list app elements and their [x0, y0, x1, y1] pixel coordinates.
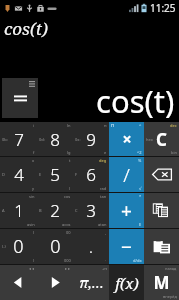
staticText: E [139, 222, 142, 227]
staticText: 0 [13, 234, 24, 259]
staticText: asin [27, 222, 35, 227]
staticText: √ [139, 186, 142, 191]
button[interactable]: Move right [37, 265, 73, 300]
button[interactable]: Move left [0, 265, 37, 300]
button[interactable]: t [37, 157, 73, 192]
staticText: d/dx [133, 258, 142, 263]
button[interactable]: ( [0, 229, 37, 264]
staticText: bin [171, 150, 177, 155]
staticText: tan [100, 194, 107, 199]
staticText: 1 [14, 199, 24, 222]
button[interactable]: Copy [144, 193, 179, 228]
button[interactable]: sin [0, 193, 37, 228]
staticText: M [153, 271, 170, 294]
staticText: · [105, 258, 107, 263]
button[interactable]: tan [73, 193, 109, 228]
staticText: sin [29, 194, 35, 199]
staticText: cos [64, 194, 71, 199]
staticText: f(x) [115, 273, 139, 293]
staticText: π [104, 123, 107, 128]
staticText: * [139, 194, 142, 199]
staticText: , [105, 230, 107, 235]
staticText: 9 [86, 128, 96, 151]
staticText: Π [111, 123, 114, 128]
staticText: atan [98, 222, 107, 227]
staticText: − [121, 234, 132, 260]
staticText: +π [102, 266, 107, 271]
staticText: ^ [139, 123, 142, 128]
staticText: i [33, 123, 35, 128]
staticText: π,… [79, 273, 104, 292]
staticText: f [33, 150, 35, 155]
staticText: D [2, 172, 5, 177]
staticText: % [138, 158, 142, 163]
button[interactable]: π [73, 122, 109, 156]
staticText: 000 [64, 258, 71, 263]
staticText: cos(t) [4, 17, 48, 40]
staticText: 3 [86, 199, 96, 222]
staticText: 11:25 [150, 1, 176, 15]
button[interactable]: Equals [2, 78, 38, 118]
button[interactable]: Backspace [144, 157, 179, 192]
staticText: 2 [50, 199, 60, 222]
staticText: acos [62, 222, 71, 227]
button[interactable]: % [109, 157, 144, 192]
staticText: 8 [50, 128, 60, 151]
button[interactable]: cos [37, 193, 73, 228]
button[interactable]: +π [73, 265, 109, 300]
button[interactable]: 00 [37, 229, 73, 264]
staticText: dec [170, 123, 177, 128]
button[interactable]: deg [73, 157, 109, 192]
staticText: cos(t) [96, 80, 175, 122]
staticText: 4 [14, 163, 24, 186]
staticText: ln [67, 123, 71, 128]
button[interactable]: x [0, 157, 37, 192]
staticText: 0b: [2, 137, 8, 142]
staticText: ▸ ▸ [65, 266, 71, 271]
button[interactable]: ln [37, 122, 73, 156]
staticText: ^2 [137, 150, 142, 155]
staticText: lg [67, 150, 71, 155]
staticText: ( [33, 230, 35, 235]
staticText: e [104, 150, 107, 155]
button[interactable]: i [0, 122, 37, 156]
staticText: C [75, 208, 78, 213]
staticText: A [2, 208, 5, 213]
staticText: deg [99, 158, 107, 163]
staticText: ◂ ◂ [29, 266, 35, 271]
button[interactable]: назад [144, 265, 179, 300]
button[interactable]: dec [144, 122, 179, 156]
staticText: C [156, 128, 167, 151]
button[interactable]: Π [109, 122, 144, 156]
staticText: 00 [66, 230, 71, 235]
staticText: 6 [86, 163, 96, 186]
staticText: x [32, 158, 35, 163]
staticText: rad [100, 186, 107, 191]
staticText: назад [165, 266, 177, 271]
staticText: 0 [50, 234, 61, 259]
staticText: B [39, 208, 42, 213]
staticText: 0x: [75, 137, 81, 142]
staticText: 7 [14, 128, 24, 151]
button[interactable]: , [73, 229, 109, 264]
staticText: (-) [2, 244, 6, 249]
staticText: y [32, 186, 35, 191]
staticText: t [69, 158, 71, 163]
staticText: ) [33, 258, 35, 263]
staticText: / [123, 162, 130, 188]
button[interactable]: f(x) [109, 265, 144, 300]
staticText: + [121, 198, 132, 224]
button[interactable]: Paste [144, 229, 179, 264]
staticText: l [69, 186, 71, 191]
staticText: вперёд [163, 294, 177, 299]
staticText: . [89, 236, 93, 258]
staticText: F [75, 172, 78, 177]
staticText: × [122, 128, 132, 150]
staticText: hex [146, 137, 153, 142]
staticText: 0d: [39, 137, 45, 142]
button[interactable]: d/dx [109, 229, 144, 264]
staticText: 5 [50, 163, 60, 186]
staticText: E [39, 172, 42, 177]
button[interactable]: * [109, 193, 144, 228]
